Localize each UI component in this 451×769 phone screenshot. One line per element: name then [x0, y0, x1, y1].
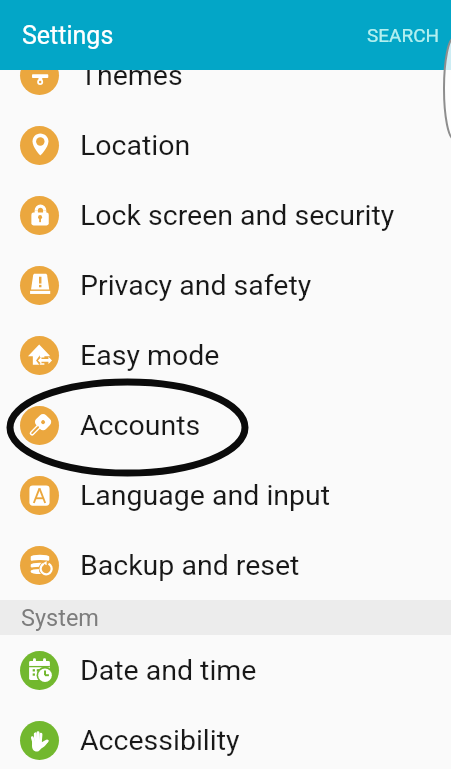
staticText: Location [80, 129, 191, 162]
staticText: SEARCH [367, 24, 440, 46]
button[interactable]: Themes [0, 40, 451, 110]
button[interactable]: Accessibility [0, 705, 451, 769]
staticText: Backup and reset [80, 549, 300, 582]
staticText: System [21, 604, 99, 632]
staticText: Accessibility [80, 724, 240, 757]
button[interactable]: Backup and reset [0, 530, 451, 600]
button[interactable]: Easy mode [0, 320, 451, 390]
button[interactable]: Privacy and safety [0, 250, 451, 320]
button[interactable]: Location [0, 110, 451, 180]
staticText: Lock screen and security [80, 199, 395, 232]
button[interactable]: Lock screen and security [0, 180, 451, 250]
button[interactable]: Accounts [0, 390, 451, 460]
staticText: Privacy and safety [80, 269, 312, 302]
staticText: Date and time [80, 654, 257, 687]
staticText: Accounts [80, 409, 201, 442]
staticText: Themes [80, 59, 183, 92]
staticText: Settings [22, 21, 114, 50]
button[interactable]: SEARCH [347, 12, 451, 58]
button[interactable]: Date and time [0, 635, 451, 705]
staticText: Language and input [80, 479, 331, 512]
staticText: Easy mode [80, 339, 220, 372]
button[interactable]: Language and input [0, 460, 451, 530]
